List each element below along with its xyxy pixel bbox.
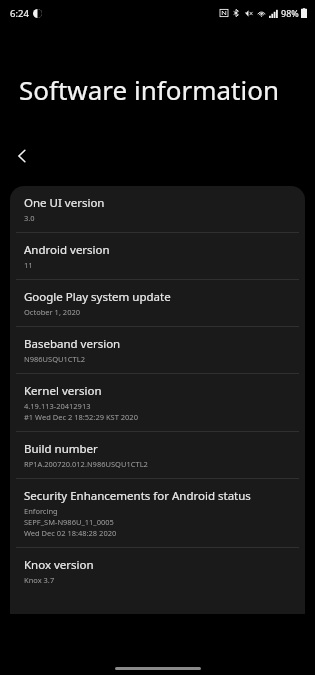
button[interactable]: Baseband version — [10, 327, 305, 373]
staticText: 6:24 — [10, 7, 29, 20]
button[interactable]: Knox version — [10, 548, 305, 594]
staticText: 98% — [281, 7, 299, 19]
staticText: Knox version — [24, 557, 94, 573]
staticText: 3.0 — [24, 213, 35, 223]
staticText: Knox 3.7 — [24, 575, 55, 585]
staticText: Android version — [24, 242, 110, 258]
staticText: Enforcing — [24, 506, 58, 516]
staticText: 4.19.113-20412913 — [24, 401, 91, 411]
staticText: 11 — [24, 260, 33, 270]
staticText: One UI version — [24, 195, 105, 211]
staticText: Kernel version — [24, 383, 102, 399]
staticText: N986USQU1CTL2 — [24, 354, 85, 364]
staticText: SEPF_SM-N986U_11_0005 — [24, 517, 114, 527]
staticText: October 1, 2020 — [24, 307, 81, 317]
staticText: Google Play system update — [24, 289, 171, 305]
button[interactable]: One UI version — [10, 186, 305, 232]
staticText: Software information — [19, 72, 279, 107]
staticText: Wed Dec 02 18:48:28 2020 — [24, 528, 117, 538]
button[interactable]: Security Enhancements for Android status — [10, 479, 305, 547]
staticText: RP1A.200720.012.N986USQU1CTL2 — [24, 459, 148, 469]
staticText: Security Enhancements for Android status — [24, 488, 251, 504]
staticText: Baseband version — [24, 336, 121, 352]
button[interactable]: Android version — [10, 233, 305, 279]
button[interactable]: Back — [0, 134, 44, 178]
button[interactable]: Kernel version — [10, 374, 305, 431]
button[interactable]: Google Play system update — [10, 280, 305, 326]
staticText: Build number — [24, 441, 98, 457]
staticText: #1 Wed Dec 2 18:52:29 KST 2020 — [24, 412, 138, 422]
button[interactable]: Build number — [10, 432, 305, 478]
